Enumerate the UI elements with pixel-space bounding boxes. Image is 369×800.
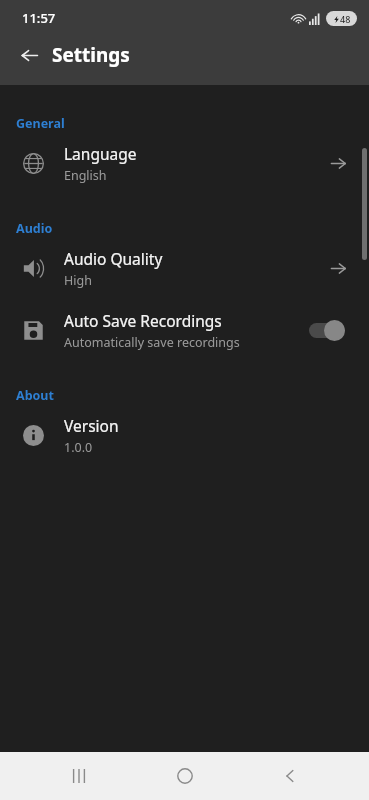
button[interactable]: Language (0, 132, 369, 194)
staticText: Audio Quality (64, 248, 163, 269)
staticText: Automatically save recordings (64, 334, 240, 351)
staticText: 11:57 (22, 9, 56, 27)
staticText: High (64, 272, 92, 289)
button[interactable]: Recent apps (53, 752, 105, 800)
button[interactable]: Home (159, 752, 211, 800)
staticText: About (16, 387, 54, 404)
staticText: Audio (16, 220, 53, 237)
button[interactable]: Back (10, 36, 48, 74)
button[interactable]: Back (264, 752, 316, 800)
button[interactable]: Auto Save Recordings (0, 299, 369, 361)
staticText: Version (64, 415, 119, 436)
staticText: General (16, 115, 65, 132)
button[interactable]: Audio Quality (0, 237, 369, 299)
staticText: Auto Save Recordings (64, 310, 222, 331)
button[interactable]: Auto save toggle (309, 317, 353, 343)
staticText: Language (64, 143, 137, 164)
staticText: 1.0.0 (64, 439, 93, 456)
staticText: Settings (52, 42, 130, 68)
button[interactable]: Version (0, 404, 369, 466)
staticText: English (64, 167, 107, 184)
staticText: 48 (340, 13, 351, 25)
